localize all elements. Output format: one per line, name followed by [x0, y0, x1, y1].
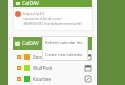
button[interactable]: Stocks [13, 51, 97, 62]
staticText: 389994181/carddavhome/card/ [23, 21, 83, 26]
button[interactable]: Calendar settings [84, 53, 91, 60]
staticText: contacts.icloud.com/ [23, 16, 62, 21]
staticText: Stocks [33, 54, 47, 60]
staticText: CalDAV [22, 0, 40, 7]
staticText: https://p23- [23, 11, 46, 16]
staticText: Refresh calendar list [45, 40, 83, 45]
button[interactable]: Sync now [84, 75, 91, 82]
button[interactable]: Create new calendar [42, 48, 88, 60]
button[interactable]: Kourbee [13, 73, 97, 84]
staticText: Kourbee [33, 76, 51, 82]
button[interactable]: WulfPack [13, 62, 97, 73]
button[interactable]: Calendar settings [84, 64, 91, 71]
staticText: CalDAV [22, 40, 39, 47]
staticText: WulfPack [33, 65, 53, 71]
button[interactable]: Refresh calendar list [42, 36, 88, 48]
button[interactable]: CalDAV [13, 0, 92, 7]
staticText: Create new calendar [45, 52, 83, 57]
button[interactable]: CalDAV [13, 37, 92, 50]
